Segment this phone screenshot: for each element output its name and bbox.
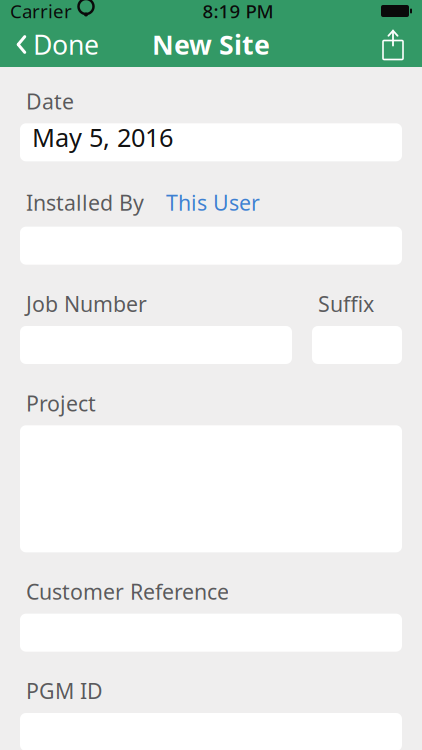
staticText: New Site xyxy=(152,27,270,62)
staticText: Job Number xyxy=(26,290,147,318)
staticText: Installed By xyxy=(26,188,144,217)
staticText: May 5, 2016 xyxy=(32,120,173,154)
staticText: Suffix xyxy=(318,290,374,318)
staticText: PGM ID xyxy=(26,677,103,705)
staticText: Date xyxy=(26,87,74,115)
button[interactable]: Done xyxy=(5,21,109,68)
staticText: Customer Reference xyxy=(26,577,229,606)
button[interactable]: Share xyxy=(369,24,417,64)
staticText: This User xyxy=(166,188,260,217)
staticText: Done xyxy=(33,27,99,62)
button[interactable] xyxy=(20,123,402,161)
button[interactable]: This User xyxy=(156,186,270,219)
staticText: Project xyxy=(26,389,96,417)
staticText: 8:19 PM xyxy=(202,0,273,23)
staticText: Carrier xyxy=(10,0,72,23)
